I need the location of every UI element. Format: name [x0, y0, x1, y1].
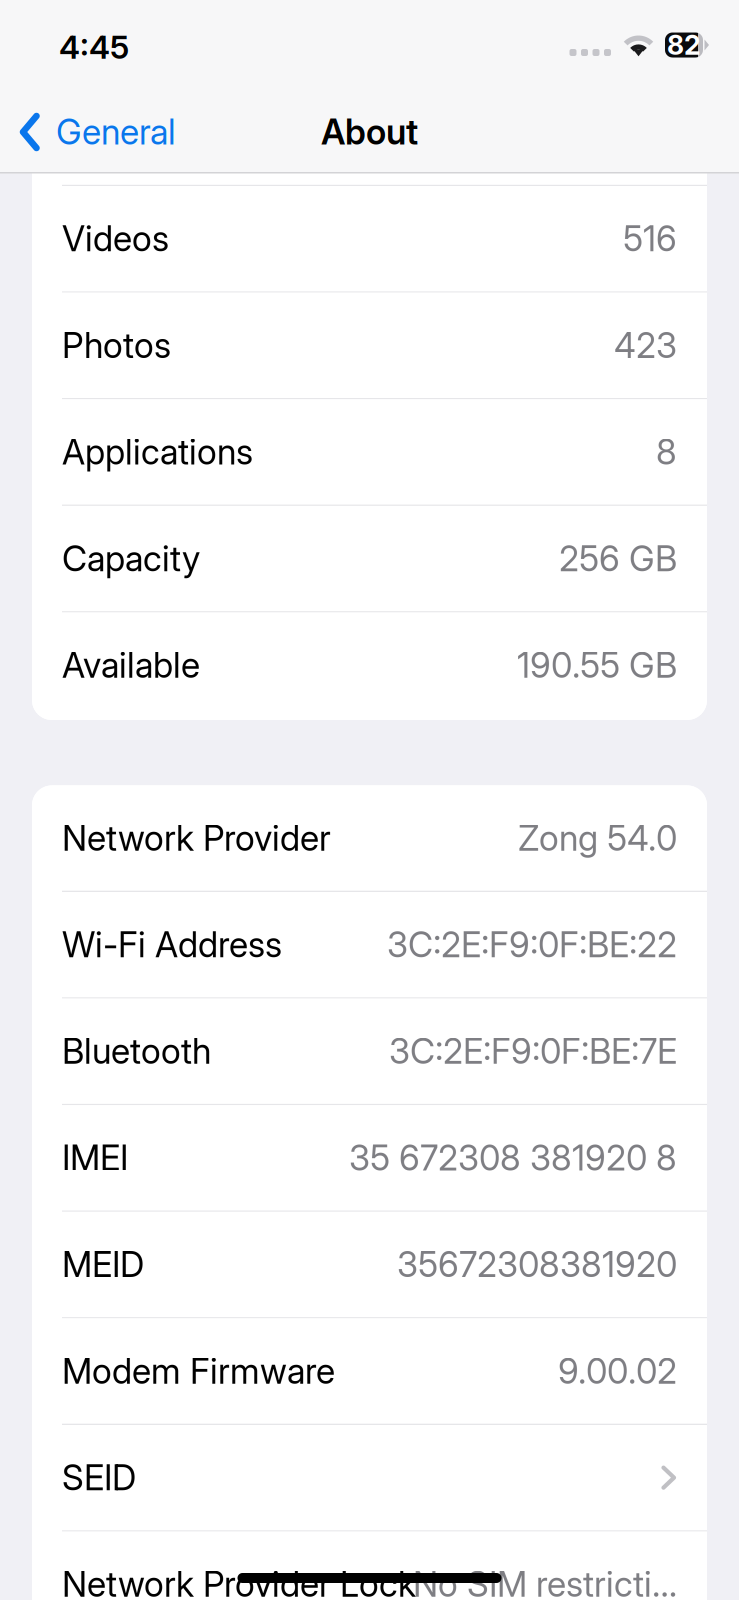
staticText: 516 — [623, 218, 677, 260]
staticText: No SIM restricti… — [413, 1563, 677, 1600]
staticText: 190.55 GB — [517, 644, 677, 686]
staticText: 35 672308 381920 8 — [349, 1137, 677, 1179]
staticText: 8 — [656, 431, 677, 473]
button[interactable]: General — [0, 99, 176, 165]
staticText: Zong 54.0 — [518, 817, 677, 859]
staticText: 9.00.02 — [558, 1350, 677, 1392]
staticText: Photos — [62, 324, 171, 366]
staticText: Bluetooth — [62, 1030, 211, 1072]
staticText: About — [321, 111, 418, 153]
staticText: Modem Firmware — [62, 1350, 335, 1392]
staticText: 4:45 — [59, 28, 129, 66]
staticText: IMEI — [62, 1137, 128, 1179]
staticText: Capacity — [62, 538, 200, 579]
staticText: 82 — [667, 29, 701, 61]
staticText: Videos — [62, 218, 169, 260]
staticText: 3C:2E:F9:0F:BE:22 — [387, 924, 677, 966]
staticText: 423 — [614, 324, 677, 366]
button[interactable]: SEID — [32, 1425, 707, 1530]
staticText: Available — [62, 644, 200, 686]
staticText: General — [56, 111, 176, 153]
staticText: 35672308381920 — [397, 1243, 677, 1285]
staticText: SEID — [62, 1457, 136, 1499]
staticText: Network Provider Lock — [62, 1563, 416, 1600]
staticText: 256 GB — [559, 538, 677, 579]
staticText: Network Provider — [62, 817, 331, 859]
staticText: MEID — [62, 1243, 144, 1285]
staticText: Applications — [62, 431, 253, 473]
staticText: 3C:2E:F9:0F:BE:7E — [389, 1030, 677, 1072]
staticText: Wi-Fi Address — [62, 924, 282, 966]
